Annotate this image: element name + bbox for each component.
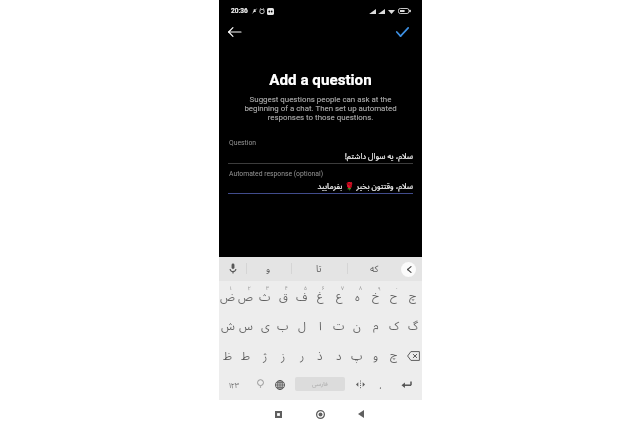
button[interactable]: فارسی: [295, 377, 345, 391]
staticText: ۸: [359, 284, 362, 291]
staticText: سلام، وقتتون بخیر 🌹 بفرمایید: [219, 181, 413, 192]
button[interactable]: Expand suggestions: [397, 258, 419, 281]
staticText: ش: [221, 318, 235, 334]
button[interactable]: د: [330, 341, 348, 370]
button[interactable]: ،: [370, 370, 390, 399]
button[interactable]: پ: [348, 341, 366, 370]
button[interactable]: ظ: [219, 341, 237, 370]
staticText: Question: [229, 139, 257, 147]
staticText: ه: [355, 289, 360, 305]
button[interactable]: ث: [256, 282, 274, 311]
button[interactable]: Recents: [270, 400, 286, 428]
staticText: ن: [353, 318, 361, 334]
button[interactable]: و: [246, 257, 291, 280]
button[interactable]: Home: [312, 400, 328, 428]
staticText: Add a question: [269, 71, 372, 89]
button[interactable]: ح: [385, 282, 403, 311]
button[interactable]: و: [367, 341, 385, 370]
button[interactable]: ذ: [311, 341, 329, 370]
button[interactable]: Symbols: [219, 370, 250, 399]
button[interactable]: Voice input: [219, 257, 246, 280]
button[interactable]: ن: [348, 311, 366, 340]
staticText: ظ: [223, 348, 233, 364]
staticText: ،: [379, 379, 382, 391]
button[interactable]: ب: [274, 311, 292, 340]
staticText: و: [266, 262, 271, 275]
button[interactable]: ه: [348, 282, 366, 311]
staticText: و: [373, 348, 379, 364]
button[interactable]: Emoji: [250, 370, 270, 399]
staticText: ع: [336, 289, 343, 305]
staticText: 20:36: [231, 7, 248, 15]
staticText: غ: [317, 289, 324, 305]
staticText: فارسی: [312, 380, 328, 388]
staticText: سلام، یه سوال داشتم!: [219, 151, 413, 162]
staticText: چ: [409, 289, 417, 305]
staticText: Suggest questions people can ask at the …: [240, 95, 401, 122]
button[interactable]: Back: [223, 21, 245, 43]
staticText: تا: [316, 262, 322, 275]
staticText: ۴: [285, 284, 288, 291]
staticText: ژ: [263, 348, 268, 364]
button[interactable]: که: [347, 257, 401, 280]
staticText: ق: [279, 289, 288, 305]
staticText: ل: [298, 318, 306, 334]
button[interactable]: چ: [404, 282, 422, 311]
button[interactable]: ژ: [256, 341, 274, 370]
button[interactable]: ل: [293, 311, 311, 340]
button[interactable]: ع: [330, 282, 348, 311]
staticText: Automated response (optional): [229, 170, 324, 178]
button[interactable]: ز: [274, 341, 292, 370]
staticText: ز: [281, 348, 286, 364]
staticText: چ: [390, 348, 398, 364]
staticText: ۶: [322, 284, 325, 291]
staticText: ی: [261, 318, 270, 334]
staticText: ث: [259, 289, 271, 305]
staticText: ض: [220, 289, 236, 305]
button[interactable]: ص: [237, 282, 255, 311]
button[interactable]: Backspace: [404, 341, 422, 370]
button[interactable]: Enter: [390, 370, 422, 399]
button[interactable]: ض: [219, 282, 237, 311]
staticText: ط: [241, 348, 251, 364]
staticText: ح: [390, 289, 398, 305]
staticText: ک: [389, 318, 400, 334]
button[interactable]: ا: [311, 311, 329, 340]
button[interactable]: تا: [291, 257, 347, 280]
button[interactable]: ک: [385, 311, 403, 340]
staticText: پ: [351, 348, 363, 364]
button[interactable]: غ: [311, 282, 329, 311]
staticText: ذ: [317, 348, 323, 364]
staticText: ر: [300, 348, 305, 364]
staticText: ۷: [341, 284, 344, 291]
button[interactable]: م: [367, 311, 385, 340]
staticText: ۹: [378, 284, 381, 291]
staticText: د: [336, 348, 342, 364]
staticText: ف: [296, 289, 308, 305]
button[interactable]: Change language: [270, 370, 290, 399]
button[interactable]: س: [237, 311, 255, 340]
button[interactable]: ط: [237, 341, 255, 370]
staticText: ت: [333, 318, 345, 334]
button[interactable]: ر: [293, 341, 311, 370]
button[interactable]: ف: [293, 282, 311, 311]
staticText: م: [373, 318, 379, 334]
staticText: ۵: [304, 284, 307, 291]
staticText: گ: [408, 318, 419, 334]
staticText: س: [239, 318, 253, 334]
staticText: ۰: [396, 284, 398, 291]
staticText: ب: [277, 318, 289, 334]
button[interactable]: Move cursor: [350, 370, 370, 399]
staticText: ص: [238, 289, 254, 305]
staticText: که: [370, 262, 379, 275]
button[interactable]: چ: [385, 341, 403, 370]
button[interactable]: ی: [256, 311, 274, 340]
button[interactable]: خ: [367, 282, 385, 311]
button[interactable]: ت: [330, 311, 348, 340]
button[interactable]: Done: [391, 21, 413, 43]
button[interactable]: Back: [353, 400, 369, 428]
staticText: ۳: [266, 284, 270, 291]
button[interactable]: ش: [219, 311, 237, 340]
button[interactable]: گ: [404, 311, 422, 340]
button[interactable]: ق: [274, 282, 292, 311]
